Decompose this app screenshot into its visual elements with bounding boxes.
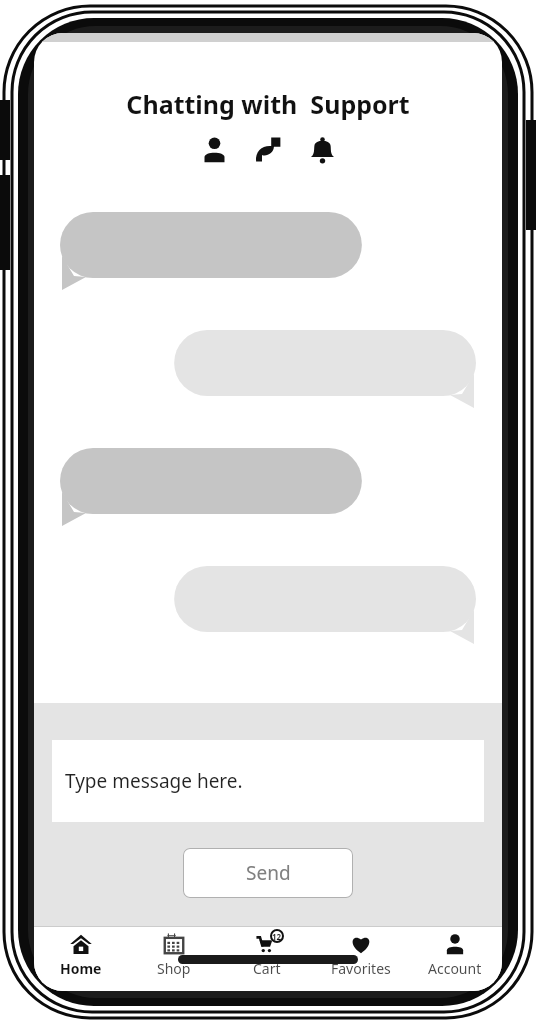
button[interactable] xyxy=(34,448,502,528)
staticText: Home xyxy=(60,959,102,978)
button[interactable]: Send xyxy=(183,848,353,898)
button[interactable]: Account xyxy=(408,927,502,991)
button[interactable]: Shop xyxy=(127,927,220,991)
button[interactable]: Favorites xyxy=(314,927,408,991)
button[interactable]: Notifications xyxy=(305,132,339,166)
staticText: Shop xyxy=(157,959,191,978)
button[interactable]: Call xyxy=(251,132,285,166)
staticText: 12 xyxy=(272,931,282,942)
button[interactable]: 12 xyxy=(220,927,314,991)
staticText: Account xyxy=(428,959,482,978)
button[interactable]: Profile xyxy=(197,132,231,166)
button[interactable]: Type message here. xyxy=(52,740,484,822)
button[interactable]: Home xyxy=(34,927,127,991)
staticText: Send xyxy=(246,860,291,886)
button[interactable] xyxy=(34,566,502,646)
staticText: Type message here. xyxy=(65,768,243,794)
button[interactable] xyxy=(34,330,502,410)
staticText: Cart xyxy=(253,959,281,978)
staticText: Chatting with Support xyxy=(34,87,502,121)
button[interactable] xyxy=(34,212,502,292)
staticText: Favorites xyxy=(331,959,391,978)
